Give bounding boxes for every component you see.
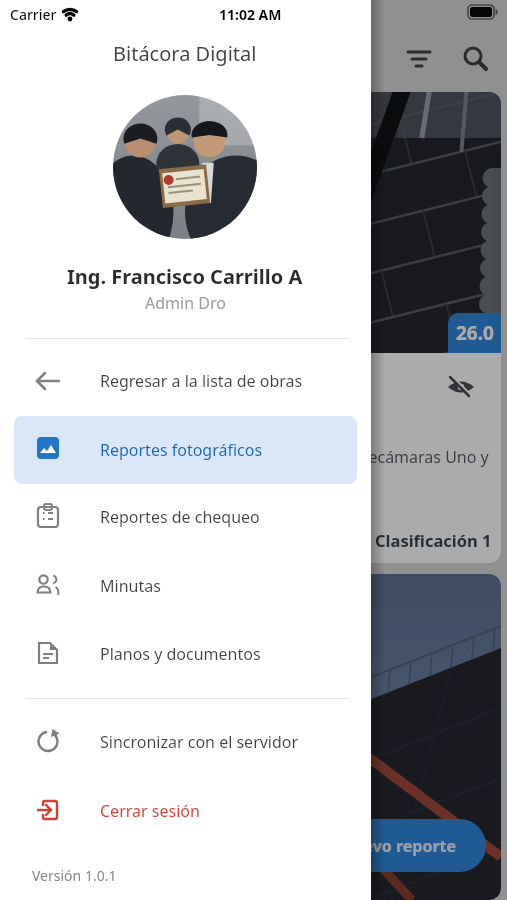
staticText: Bitácora Digital <box>113 40 257 67</box>
staticText: Regresar a la lista de obras <box>100 370 303 392</box>
staticText: Remodelación de recámaras Uno y <box>228 446 489 468</box>
staticText: Admin Dro <box>145 292 226 314</box>
staticText: Minutas <box>100 575 161 597</box>
staticText: Carrier <box>10 5 57 24</box>
staticText: Planos y documentos <box>100 643 261 665</box>
staticText: Reportes de chequeo <box>100 506 260 528</box>
staticText: Ing. Francisco Carrillo A <box>67 263 303 290</box>
staticText: Reportes fotográficos <box>100 439 263 461</box>
staticText: Versión 1.0.1 <box>32 866 117 885</box>
staticText: 11:02 AM <box>219 5 282 24</box>
staticText: Sincronizar con el servidor <box>100 731 299 753</box>
staticText: Nuevo reporte <box>340 835 457 857</box>
staticText: Clasificación 1 <box>375 529 492 551</box>
staticText: Cerrar sesión <box>100 800 200 822</box>
staticText: 26.0 <box>456 320 494 346</box>
